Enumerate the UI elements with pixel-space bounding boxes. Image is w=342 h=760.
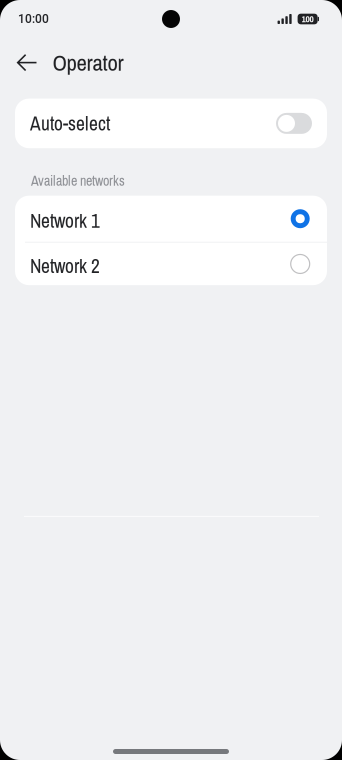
staticText: Operator xyxy=(52,47,123,78)
button[interactable]: Auto-select xyxy=(15,99,327,148)
staticText: Auto-select xyxy=(30,110,110,136)
button[interactable]: Network 1 xyxy=(15,196,327,242)
button[interactable]: Network 2 xyxy=(15,243,327,285)
staticText: Network 2 xyxy=(30,253,100,279)
staticText: 100 xyxy=(302,13,314,25)
staticText: Available networks xyxy=(31,171,125,190)
staticText: 10:00 xyxy=(18,12,49,26)
button[interactable]: Back xyxy=(8,38,46,84)
button[interactable]: Operator xyxy=(46,38,123,84)
staticText: Network 1 xyxy=(30,208,100,234)
